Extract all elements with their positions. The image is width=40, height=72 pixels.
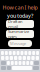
staticText: How can I help xyxy=(2,4,37,11)
staticText: Summarize notes xyxy=(8,29,29,39)
staticText: Draft an email xyxy=(8,19,22,29)
staticText: you today? xyxy=(7,12,33,19)
button[interactable]: Message xyxy=(8,40,32,47)
staticText: Message xyxy=(10,41,26,46)
button[interactable]: Summarize notes xyxy=(6,30,34,38)
button[interactable]: Draft an email xyxy=(6,20,34,28)
